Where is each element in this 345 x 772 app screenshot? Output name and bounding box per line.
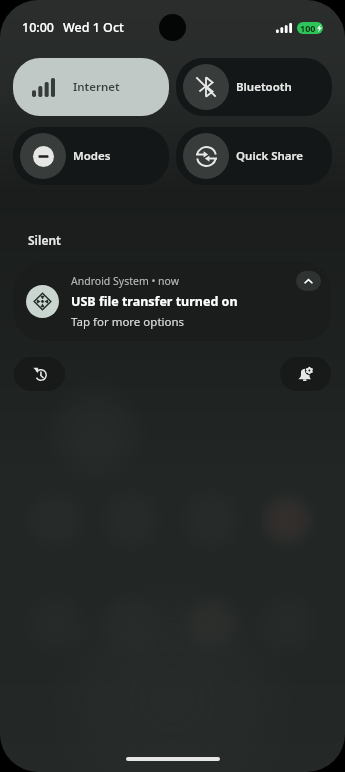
staticText: Tap for more options <box>71 314 185 330</box>
staticText: Internet <box>73 79 120 95</box>
button[interactable]: Android System • now <box>14 262 331 341</box>
button[interactable]: Notification settings <box>280 357 331 391</box>
staticText: USB file transfer turned on <box>71 293 238 310</box>
staticText: Wed 1 Oct <box>63 19 124 36</box>
button[interactable]: Collapse notification <box>296 271 321 291</box>
staticText: 100 <box>300 22 316 34</box>
staticText: Bluetooth <box>236 79 292 95</box>
button[interactable]: Quick Share <box>176 127 332 185</box>
button[interactable]: Bluetooth <box>176 58 332 116</box>
button[interactable]: Internet <box>13 58 169 116</box>
staticText: 10:00 <box>22 19 55 36</box>
button[interactable]: Notification history <box>14 357 65 391</box>
staticText: Modes <box>73 148 111 164</box>
staticText: Quick Share <box>236 148 304 164</box>
staticText: Android System • now <box>71 274 180 288</box>
button[interactable]: Modes <box>13 127 169 185</box>
staticText: Silent <box>28 232 61 248</box>
